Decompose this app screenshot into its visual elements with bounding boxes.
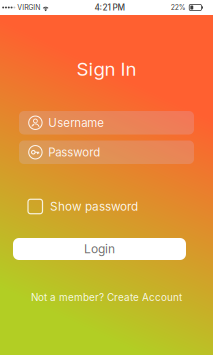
button[interactable]: Login <box>13 238 186 260</box>
staticText: Password <box>48 145 100 159</box>
staticText: Sign In <box>76 58 136 80</box>
button[interactable]: Password <box>19 140 194 164</box>
staticText: Login <box>84 242 115 256</box>
staticText: Not a member? Create Account <box>31 291 182 303</box>
button[interactable]: Not a member? Create Account <box>0 291 213 304</box>
button[interactable]: Username <box>19 111 194 134</box>
staticText: Show password <box>50 199 138 214</box>
staticText: VIRGIN <box>17 3 40 12</box>
button[interactable]: Show password <box>0 199 213 214</box>
staticText: 4:21 PM <box>94 2 125 12</box>
staticText: Username <box>48 116 104 130</box>
staticText: 22% <box>171 3 186 12</box>
